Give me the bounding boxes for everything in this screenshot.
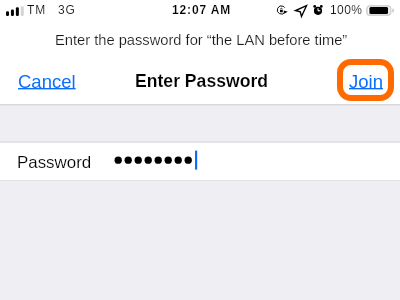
other: Battery full (366, 5, 395, 17)
staticText: Enter Password (135, 71, 268, 91)
button[interactable]: Cancel (9, 59, 83, 101)
other: Location (295, 5, 307, 17)
staticText: Cancel (18, 71, 76, 92)
other: Rotation lock (277, 5, 287, 15)
staticText: 100% (330, 3, 363, 16)
staticText: 12:07 AM (172, 3, 232, 16)
staticText: Password (17, 153, 92, 172)
button[interactable]: Join (337, 59, 394, 101)
staticText: TM (27, 3, 47, 16)
staticText: Join (349, 71, 383, 92)
button[interactable]: Password (0, 141, 400, 181)
other: Alarm (313, 5, 323, 15)
staticText: 3G (58, 3, 76, 16)
staticText: Enter the password for “the LAN before t… (55, 32, 348, 48)
